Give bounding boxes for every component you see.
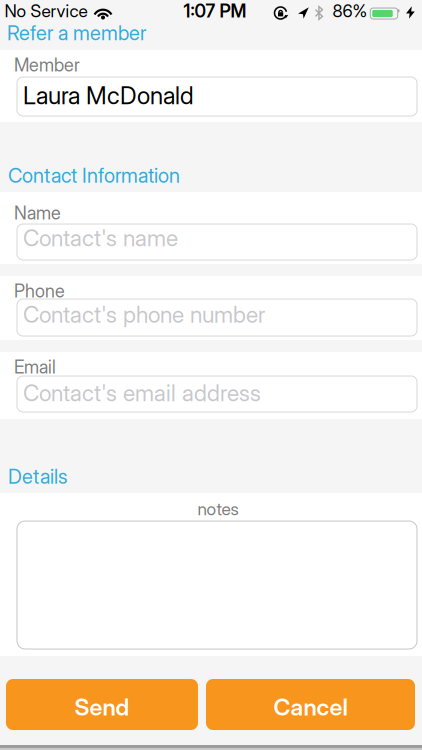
staticText: Name (14, 202, 61, 224)
staticText: Contact's phone number (23, 301, 265, 328)
button[interactable]: Cancel (206, 679, 415, 730)
button[interactable]: Laura McDonald (0, 77, 422, 116)
staticText: Email (14, 356, 56, 378)
staticText: Send (74, 693, 129, 721)
staticText: Contact Information (8, 163, 180, 188)
staticText: Member (14, 54, 80, 76)
staticText: Contact's email address (23, 379, 261, 407)
staticText: Laura McDonald (23, 81, 194, 110)
staticText: 1:07 PM (183, 0, 246, 22)
button[interactable]: Contact's name (0, 224, 422, 260)
button[interactable]: Refer a member (0, 20, 422, 44)
staticText: 86% (332, 0, 367, 21)
staticText: Refer a member (7, 21, 146, 45)
staticText: Phone (14, 280, 65, 302)
staticText: Cancel (273, 693, 347, 721)
button[interactable]: Contact's phone number (0, 299, 422, 336)
button[interactable]: Send (6, 679, 198, 730)
staticText: Contact's name (23, 224, 178, 252)
staticText: notes (197, 498, 238, 519)
button[interactable]: notes (0, 521, 422, 649)
staticText: No Service (4, 0, 87, 21)
staticText: Details (8, 464, 67, 489)
button[interactable]: Contact's email address (0, 376, 422, 412)
